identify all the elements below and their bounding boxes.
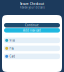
staticText: Continue: [25, 23, 39, 27]
staticText: Pay: [9, 47, 13, 50]
staticText: Add new card: [23, 29, 41, 32]
button[interactable]: Card: [2, 54, 62, 62]
staticText: Card: [9, 55, 15, 58]
button[interactable]: Visa: [2, 38, 62, 46]
staticText: Secure Checkout: [20, 2, 44, 6]
button[interactable]: Add new card: [4, 28, 60, 33]
button[interactable]: Continue: [4, 23, 60, 27]
button[interactable]: Pay: [2, 46, 62, 54]
staticText: Review your details: [19, 6, 44, 9]
staticText: Visa: [9, 39, 14, 42]
